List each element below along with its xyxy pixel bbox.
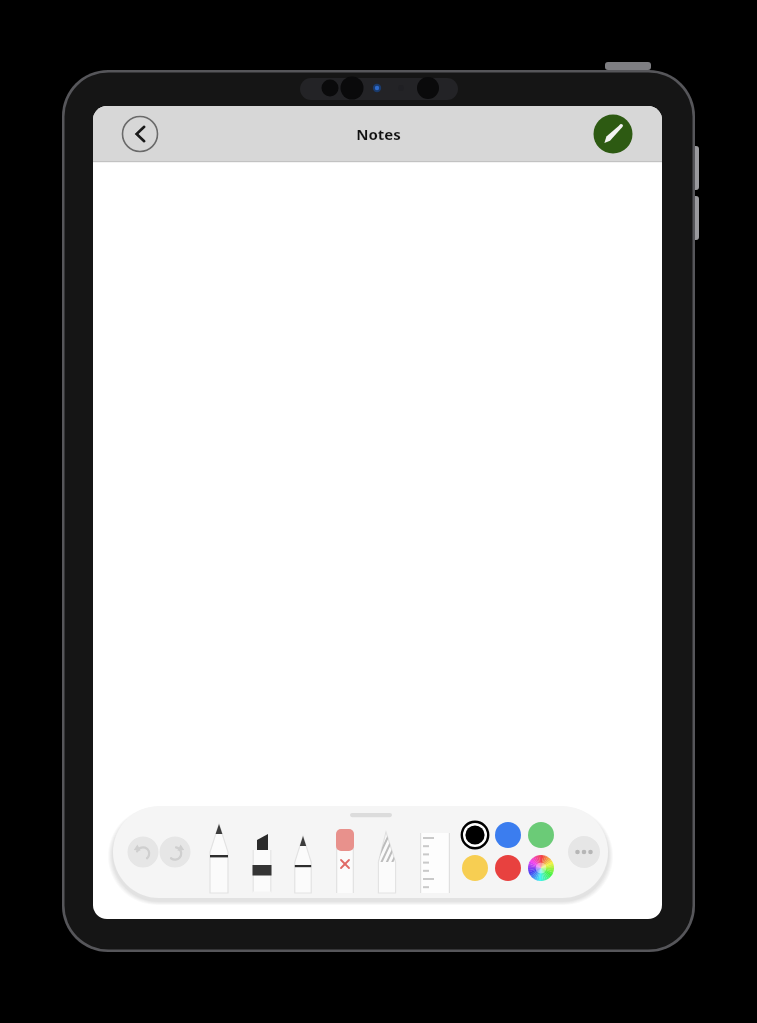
button[interactable]: Yellow: [461, 854, 489, 882]
button[interactable]: Brush: [368, 820, 406, 896]
staticText: Notes: [356, 124, 401, 144]
button[interactable]: Blue: [494, 821, 522, 849]
button[interactable]: Pen: [200, 820, 238, 896]
button[interactable]: Undo: [127, 836, 159, 868]
button[interactable]: Green: [527, 821, 555, 849]
button[interactable]: Red: [494, 854, 522, 882]
button[interactable]: Black: [461, 821, 489, 849]
button[interactable]: Eraser: [326, 820, 364, 896]
button[interactable]: Redo: [159, 836, 191, 868]
button[interactable]: Colour picker: [527, 854, 555, 882]
button[interactable]: Pencil: [284, 820, 322, 896]
button[interactable]: New note: [593, 114, 633, 154]
button[interactable]: More options: [568, 836, 600, 868]
button[interactable]: Ruler: [419, 820, 457, 896]
button[interactable]: Marker: [243, 820, 281, 896]
button[interactable]: Back: [121, 115, 159, 153]
